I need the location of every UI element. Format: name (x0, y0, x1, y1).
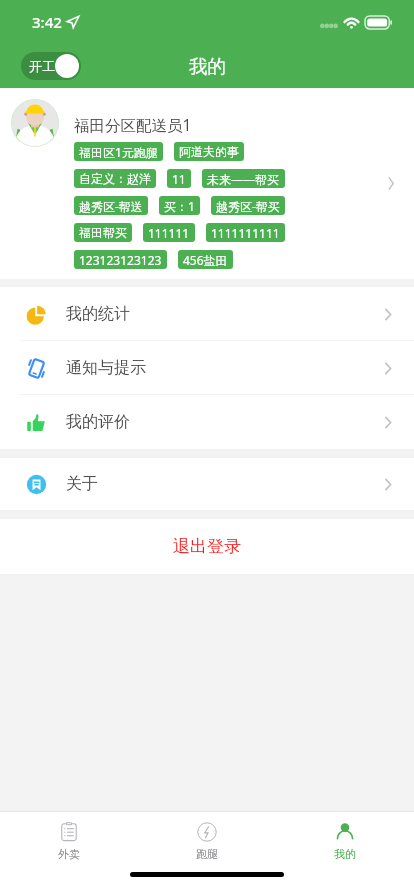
button[interactable]: 我的 (276, 812, 414, 861)
button[interactable]: 福田分区配送员1 (0, 88, 414, 279)
staticText: 买：1 (164, 198, 195, 214)
button[interactable]: 开工 toggle (21, 52, 81, 80)
button[interactable]: 退出登录 (0, 519, 414, 574)
staticText: 3:42 (32, 12, 62, 32)
staticText: 福田区1元跑腿 (79, 144, 158, 160)
staticText: 开工 (29, 58, 55, 74)
staticText: 123123123123 (79, 252, 162, 268)
button[interactable]: 跑腿 (138, 812, 276, 861)
staticText: 外卖 (58, 847, 80, 861)
staticText: 我的统计 (66, 304, 130, 324)
staticText: 退出登录 (173, 536, 241, 557)
button[interactable]: 通知与提示 (0, 341, 414, 395)
staticText: 通知与提示 (66, 358, 146, 378)
button[interactable]: 我的评价 (0, 395, 414, 449)
staticText: 111111 (148, 225, 190, 241)
staticText: 关于 (66, 474, 98, 494)
staticText: 我的评价 (66, 412, 130, 432)
staticText: 我的 (189, 55, 226, 78)
staticText: 我的 (334, 847, 356, 861)
staticText: 福田帮买 (79, 225, 127, 240)
staticText: 自定义：赵洋 (79, 171, 151, 186)
staticText: 1111111111 (211, 225, 280, 241)
staticText: 阿道夫的事 (179, 144, 239, 159)
staticText: 越秀区-帮送 (79, 198, 143, 214)
button[interactable]: 关于 (0, 458, 414, 510)
staticText: 456盐田 (183, 252, 228, 268)
button[interactable]: 外卖 (0, 812, 138, 861)
staticText: 越秀区-帮买 (216, 198, 280, 214)
staticText: 福田分区配送员1 (74, 114, 192, 135)
staticText: 未来——帮买 (207, 171, 280, 187)
staticText: 跑腿 (196, 847, 218, 861)
staticText: 11 (172, 171, 186, 187)
button[interactable]: 我的统计 (0, 287, 414, 341)
